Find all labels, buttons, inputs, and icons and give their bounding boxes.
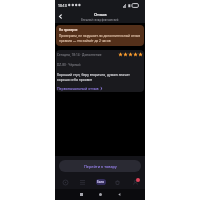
button[interactable]: Profile bbox=[128, 175, 143, 189]
button[interactable]: Back bbox=[56, 12, 65, 21]
button[interactable]: Recents bbox=[76, 189, 87, 200]
button[interactable]: Back bbox=[114, 189, 125, 200]
button[interactable]: Home bbox=[58, 175, 73, 189]
staticText: 10:13 bbox=[58, 3, 67, 8]
staticText: Внешний склад флагманский bbox=[81, 18, 119, 22]
button[interactable]: Перейти к товару bbox=[59, 160, 141, 172]
button[interactable]: Home bbox=[95, 189, 106, 200]
staticText: Первоначальный отзыв bbox=[57, 86, 99, 91]
staticText: Было bbox=[97, 180, 105, 184]
staticText: Проверяем, не нарушает ли дополнительный… bbox=[59, 34, 141, 43]
staticText: Перейти к товару bbox=[84, 164, 117, 169]
button[interactable]: Первоначальный отзыв bbox=[57, 86, 103, 91]
staticText: Хороший стул, беру вторично, думаю значи… bbox=[57, 72, 143, 82]
staticText: На проверке bbox=[59, 28, 78, 32]
button[interactable]: Basket bbox=[110, 175, 125, 189]
button[interactable]: Cart tab bbox=[93, 175, 108, 189]
button[interactable]: Catalog bbox=[75, 175, 90, 189]
staticText: DZ-80 · Чёрный bbox=[57, 63, 81, 67]
staticText: Отзыв bbox=[94, 12, 107, 17]
staticText: Сегодня, 18:14 · Дополнение bbox=[57, 53, 102, 57]
